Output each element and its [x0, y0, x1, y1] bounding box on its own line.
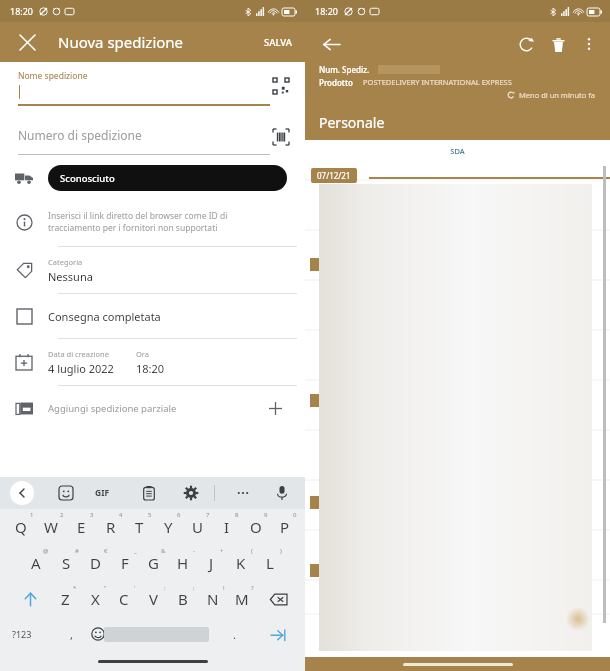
staticText: ?123	[12, 628, 32, 640]
staticText: E	[77, 517, 86, 537]
button[interactable]: Scansiona codice a barre	[267, 123, 295, 151]
button[interactable]: Y	[154, 510, 183, 544]
button[interactable]: N	[200, 582, 226, 616]
button[interactable]: ,	[62, 625, 80, 643]
button[interactable]: .	[225, 625, 243, 643]
button[interactable]: X	[82, 582, 108, 616]
staticText: Ora	[136, 349, 150, 359]
button[interactable]: L	[255, 546, 284, 580]
button[interactable]: R	[96, 510, 125, 544]
button[interactable]: V	[141, 582, 167, 616]
button[interactable]: Aggiorna	[510, 28, 542, 60]
button[interactable]: Indietro	[10, 481, 34, 505]
staticText: Meno di un minuto fa	[519, 90, 596, 100]
staticText: U	[192, 517, 203, 537]
staticText: !	[223, 584, 225, 592]
staticText: Consegna completata	[48, 309, 161, 324]
staticText: +	[220, 547, 224, 555]
button[interactable]: Categoria	[0, 247, 305, 293]
button[interactable]: I	[212, 510, 241, 544]
button[interactable]: Emoji	[88, 624, 108, 644]
staticText: Personale	[319, 113, 385, 132]
button[interactable]: Z	[52, 582, 78, 616]
button[interactable]: T	[125, 510, 154, 544]
button[interactable]: J	[197, 546, 226, 580]
button[interactable]: Sticker	[55, 482, 77, 504]
button[interactable]: Chiudi	[10, 25, 44, 59]
staticText: Data di creazione	[48, 349, 109, 359]
button[interactable]: ?123	[12, 628, 32, 640]
button[interactable]: Scansiona QR	[267, 72, 295, 100]
button[interactable]: Altro	[232, 482, 254, 504]
button[interactable]: Appunti	[138, 482, 160, 504]
button[interactable]: F	[110, 546, 139, 580]
staticText: 0	[293, 511, 297, 519]
staticText: (	[251, 547, 253, 555]
staticText: 18:20	[10, 5, 34, 17]
staticText: P	[280, 517, 290, 537]
button[interactable]: C	[111, 582, 137, 616]
button[interactable]: Altre opzioni	[574, 29, 604, 59]
button[interactable]: Impostazioni	[180, 482, 202, 504]
staticText: 2	[60, 511, 64, 519]
staticText: Inserisci il link diretto del browser co…	[48, 210, 228, 234]
button[interactable]: Maiuscole	[18, 587, 42, 611]
button[interactable]: Q	[6, 510, 36, 544]
button[interactable]: A	[21, 546, 51, 580]
button[interactable]: Invio	[267, 623, 289, 645]
staticText: G	[148, 553, 159, 573]
staticText: 6	[177, 511, 181, 519]
staticText: _	[134, 547, 137, 555]
staticText: Nuova spedizione	[58, 32, 184, 52]
staticText: K	[236, 553, 246, 573]
button[interactable]: SDA	[436, 142, 479, 160]
button[interactable]: Dettatura vocale	[271, 482, 293, 504]
button[interactable]: B	[170, 582, 196, 616]
button[interactable]: D	[81, 546, 110, 580]
staticText: @	[43, 547, 49, 555]
button[interactable]: S	[51, 546, 81, 580]
button[interactable]: Consegna completata	[0, 294, 305, 338]
staticText: 7	[206, 511, 210, 519]
staticText: Numero di spedizione	[18, 127, 142, 143]
button[interactable]: GIF	[95, 487, 110, 499]
button[interactable]: Sconosciuto	[0, 158, 305, 198]
staticText: Num. Spediz.	[319, 64, 370, 75]
button[interactable]: Elimina	[542, 28, 574, 60]
staticText: L	[266, 553, 274, 573]
button[interactable]: O	[241, 510, 270, 544]
staticText: POSTEDELIVERY INTERNATIONAL EXPRESS	[363, 77, 512, 87]
button[interactable]: H	[168, 546, 197, 580]
staticText: *	[73, 584, 77, 592]
button[interactable]: Cancella	[265, 586, 291, 612]
staticText: 4	[119, 511, 123, 519]
button[interactable]: K	[226, 546, 255, 580]
staticText: D	[90, 553, 101, 573]
staticText: 3	[90, 511, 94, 519]
staticText: I	[224, 517, 230, 537]
button[interactable]: U	[183, 510, 212, 544]
staticText: 8	[235, 511, 239, 519]
staticText: X	[91, 589, 100, 609]
staticText: F	[121, 553, 129, 573]
button[interactable]: E	[66, 510, 96, 544]
staticText: N	[207, 589, 219, 609]
staticText: Prodotto	[319, 77, 353, 88]
staticText: 5	[148, 511, 152, 519]
button[interactable]: M	[229, 582, 255, 616]
staticText: J	[209, 553, 214, 573]
staticText: '	[134, 584, 136, 592]
staticText: W	[44, 517, 58, 537]
button[interactable]: G	[139, 546, 168, 580]
button[interactable]: SALVA	[252, 28, 305, 57]
staticText: A	[31, 553, 41, 573]
staticText: Nome spedizione	[18, 70, 88, 82]
button[interactable]: Aggiungi spedizione parziale	[0, 386, 305, 430]
button[interactable]: Indietro	[315, 28, 347, 60]
button[interactable]: W	[36, 510, 66, 544]
button[interactable]: P	[270, 510, 299, 544]
staticText: 07/12/21	[317, 170, 351, 181]
staticText: Nessuna	[48, 269, 93, 284]
button[interactable]: Data di creazione	[0, 339, 305, 385]
